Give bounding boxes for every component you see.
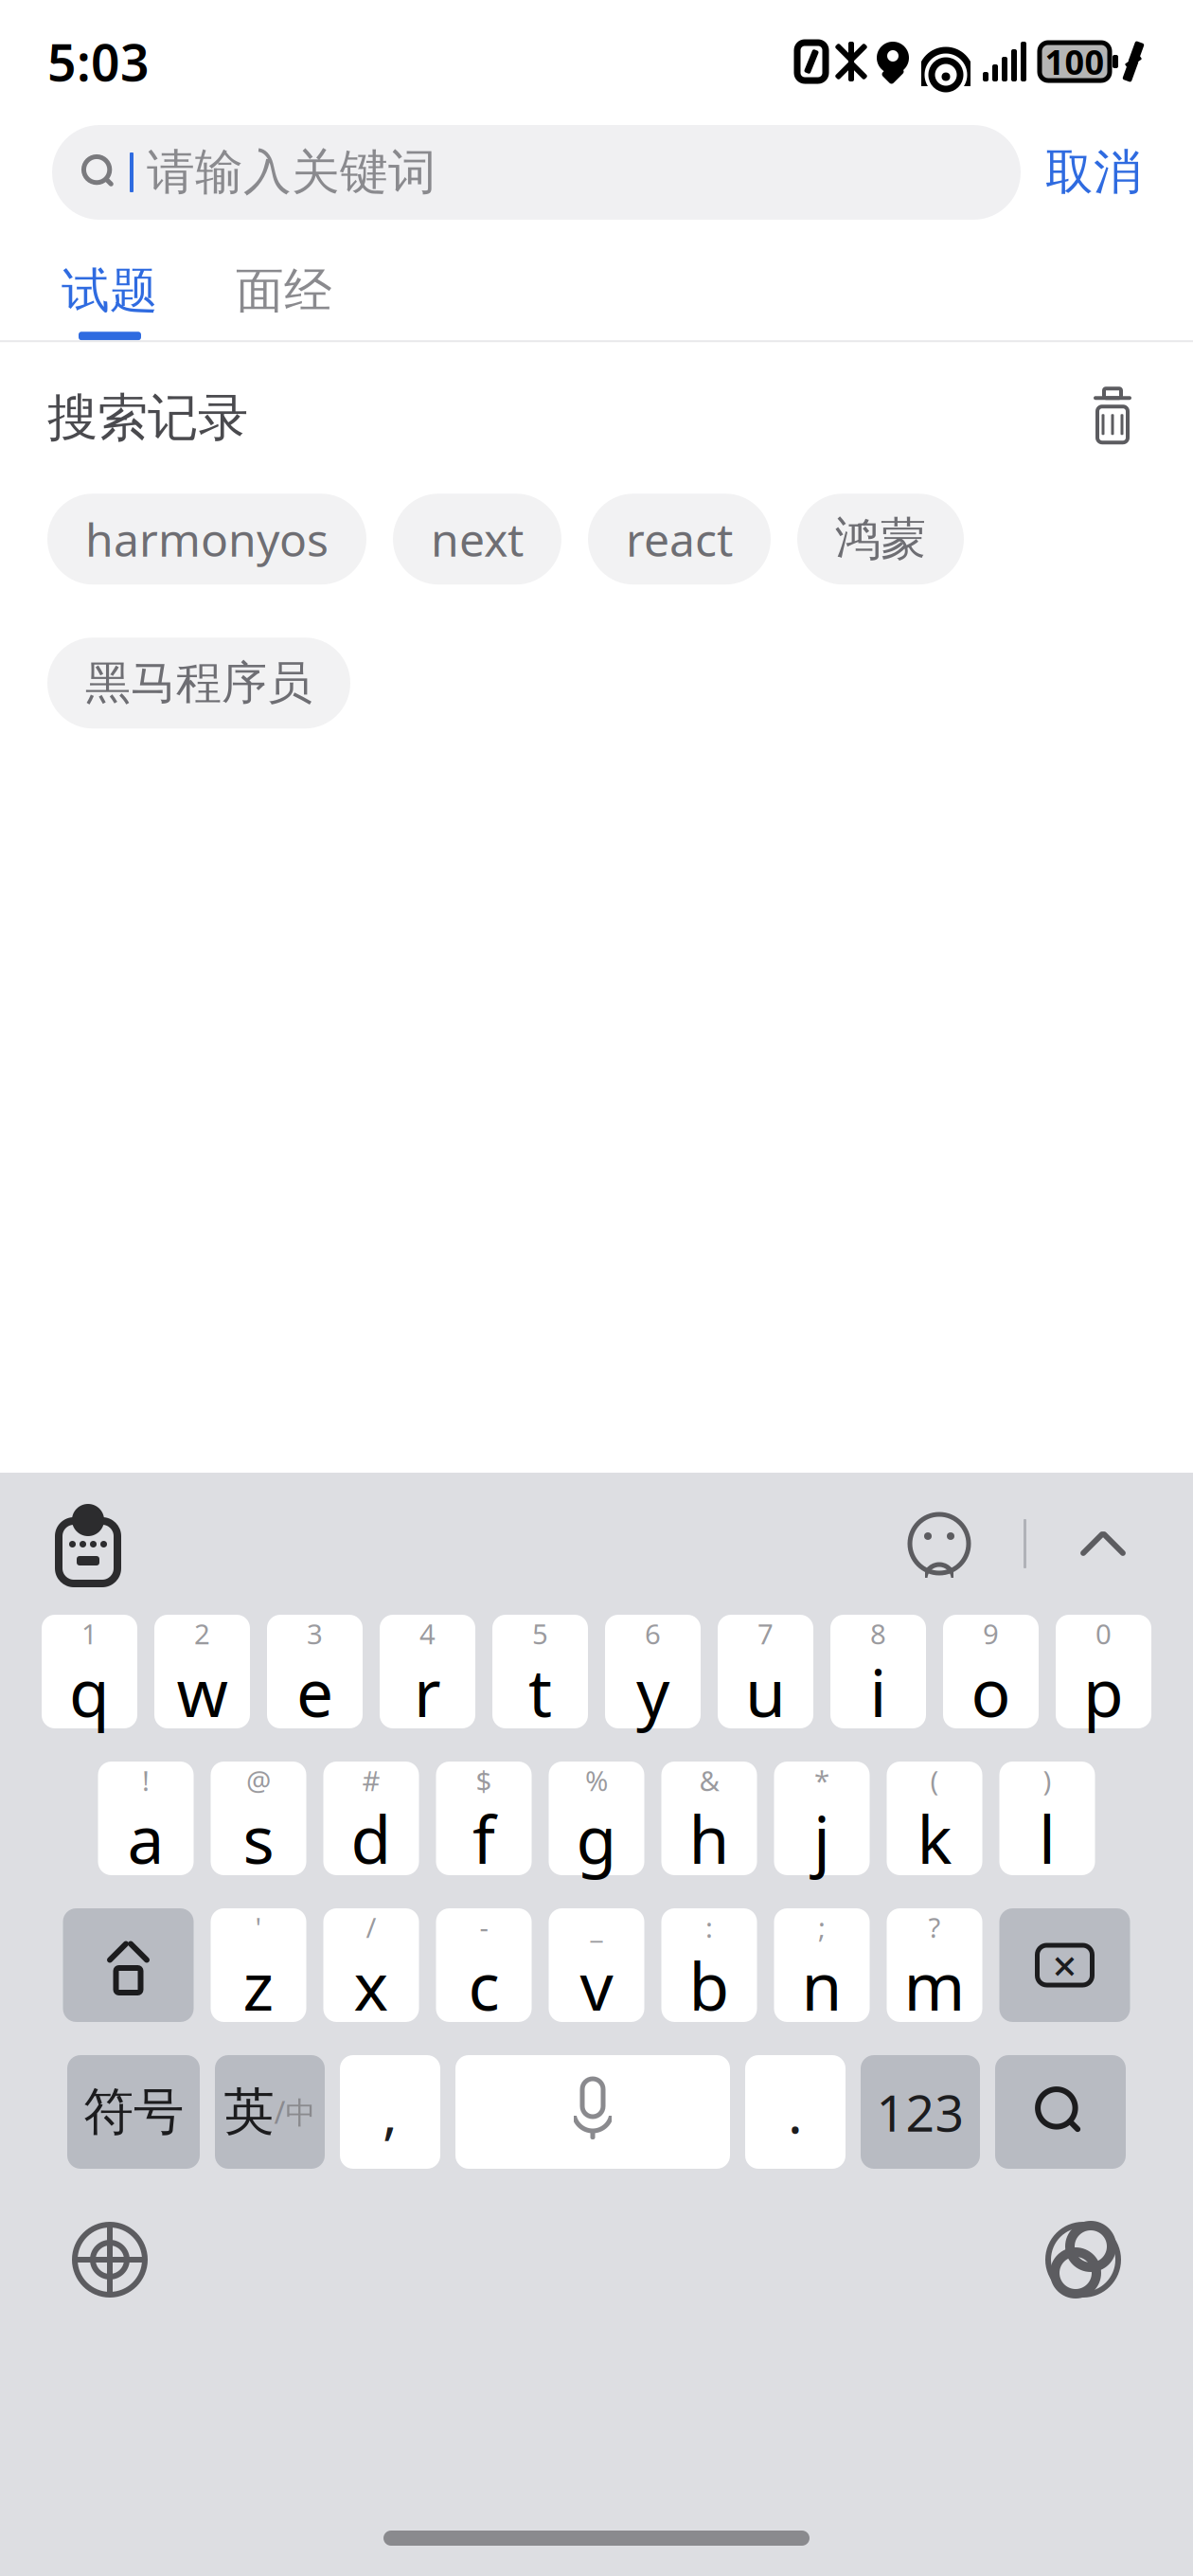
button[interactable]: 9: [943, 1615, 1039, 1728]
button[interactable]: 英: [215, 2055, 325, 2169]
staticText: p: [1083, 1648, 1124, 1735]
staticText: n: [801, 1941, 842, 2029]
staticText: y: [636, 1648, 669, 1735]
staticText: 面经: [236, 261, 332, 320]
staticText: $: [476, 1762, 492, 1799]
staticText: !: [142, 1762, 150, 1799]
button[interactable]: 5: [492, 1615, 588, 1728]
button[interactable]: ': [211, 1908, 306, 2022]
staticText: %: [585, 1762, 608, 1799]
button[interactable]: *: [774, 1762, 870, 1875]
staticText: o: [971, 1648, 1011, 1735]
button[interactable]: 搜索: [995, 2055, 1126, 2169]
staticText: 试题: [62, 261, 158, 320]
button[interactable]: .: [745, 2055, 846, 2169]
button[interactable]: -: [436, 1908, 532, 2022]
staticText: ': [255, 1909, 262, 1946]
button[interactable]: (: [887, 1762, 982, 1875]
staticText: ): [1043, 1762, 1051, 1799]
button[interactable]: 表情: [895, 1499, 984, 1588]
button[interactable]: 鸿蒙: [797, 494, 964, 585]
button[interactable]: ,: [340, 2055, 440, 2169]
button[interactable]: 1: [42, 1615, 137, 1728]
button[interactable]: %: [549, 1762, 644, 1875]
staticText: b: [689, 1941, 730, 2029]
staticText: ,: [383, 2075, 398, 2149]
staticText: 5:03: [47, 28, 150, 95]
button[interactable]: 语音助手: [42, 1490, 134, 1598]
staticText: 3: [307, 1615, 323, 1652]
staticText: 123: [876, 2078, 964, 2145]
staticText: l: [1039, 1795, 1056, 1882]
staticText: c: [468, 1941, 499, 2029]
button[interactable]: #: [323, 1762, 419, 1875]
staticText: e: [296, 1648, 333, 1735]
staticText: 搜索记录: [47, 387, 248, 449]
staticText: f: [472, 1795, 495, 1882]
staticText: .: [788, 2075, 803, 2149]
button[interactable]: 试题: [48, 242, 171, 340]
button[interactable]: @: [211, 1762, 306, 1875]
button[interactable]: _: [549, 1908, 644, 2022]
button[interactable]: ): [999, 1762, 1095, 1875]
staticText: h: [689, 1795, 730, 1882]
button[interactable]: /: [323, 1908, 419, 2022]
button[interactable]: harmonyos: [47, 494, 366, 585]
button[interactable]: 3: [267, 1615, 363, 1728]
button[interactable]: 空格: [455, 2055, 730, 2169]
staticText: a: [127, 1795, 164, 1882]
button[interactable]: 7: [718, 1615, 813, 1728]
staticText: r: [414, 1648, 441, 1735]
button[interactable]: 键盘设置: [1030, 2207, 1136, 2313]
staticText: v: [580, 1941, 613, 2029]
staticText: 6: [645, 1615, 661, 1652]
staticText: :: [705, 1909, 713, 1946]
staticText: i: [870, 1648, 887, 1735]
staticText: t: [528, 1648, 552, 1735]
staticText: 黑马程序员: [85, 655, 312, 711]
button[interactable]: 0: [1056, 1615, 1151, 1728]
staticText: next: [431, 509, 524, 569]
button[interactable]: ?: [887, 1908, 982, 2022]
staticText: ×: [1052, 1937, 1077, 1994]
staticText: -: [480, 1909, 488, 1946]
staticText: 取消: [1045, 143, 1142, 202]
staticText: q: [69, 1648, 110, 1735]
button[interactable]: 面经: [223, 242, 346, 340]
staticText: #: [362, 1762, 380, 1799]
button[interactable]: &: [661, 1762, 757, 1875]
staticText: 100: [1045, 39, 1104, 84]
button[interactable]: 清空搜索记录: [1079, 382, 1146, 454]
staticText: d: [351, 1795, 392, 1882]
button[interactable]: 2: [154, 1615, 250, 1728]
button[interactable]: 8: [830, 1615, 926, 1728]
button[interactable]: 请输入关键词: [52, 125, 1021, 220]
staticText: s: [243, 1795, 274, 1882]
button[interactable]: ;: [774, 1908, 870, 2022]
staticText: _: [590, 1909, 603, 1946]
staticText: *: [814, 1762, 829, 1799]
button[interactable]: !: [98, 1762, 194, 1875]
button[interactable]: react: [588, 494, 771, 585]
button[interactable]: 符号: [67, 2055, 200, 2169]
staticText: 2: [194, 1615, 210, 1652]
button[interactable]: 切换输入法: [57, 2207, 163, 2313]
button[interactable]: 123: [861, 2055, 980, 2169]
button[interactable]: 黑马程序员: [47, 638, 350, 728]
button[interactable]: 收起键盘: [1066, 1512, 1140, 1576]
staticText: x: [354, 1941, 389, 2029]
button[interactable]: 取消: [1021, 125, 1166, 220]
staticText: u: [745, 1648, 786, 1735]
staticText: 7: [757, 1615, 774, 1652]
staticText: (: [930, 1762, 939, 1799]
staticText: g: [576, 1795, 617, 1882]
button[interactable]: next: [393, 494, 561, 585]
staticText: @: [246, 1762, 271, 1799]
staticText: ;: [818, 1909, 826, 1946]
button[interactable]: Shift: [63, 1908, 194, 2022]
button[interactable]: :: [661, 1908, 757, 2022]
button[interactable]: 4: [380, 1615, 475, 1728]
button[interactable]: $: [436, 1762, 532, 1875]
button[interactable]: 6: [605, 1615, 701, 1728]
button[interactable]: 删除: [999, 1908, 1130, 2022]
